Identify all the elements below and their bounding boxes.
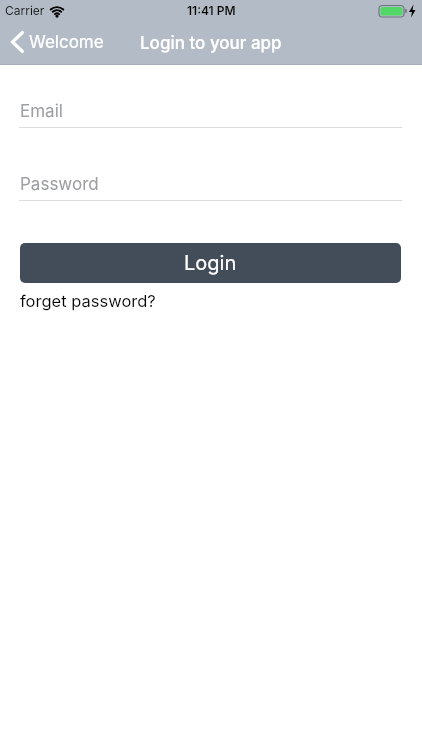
staticText: Login to your app	[140, 33, 282, 54]
staticText: Password	[20, 174, 99, 195]
staticText: forget password?	[20, 291, 156, 311]
staticText: 11:41 PM	[187, 3, 236, 18]
staticText: Login	[184, 251, 237, 275]
staticText: Welcome	[29, 32, 104, 53]
staticText: Email	[20, 101, 63, 122]
staticText: Carrier	[5, 3, 45, 18]
